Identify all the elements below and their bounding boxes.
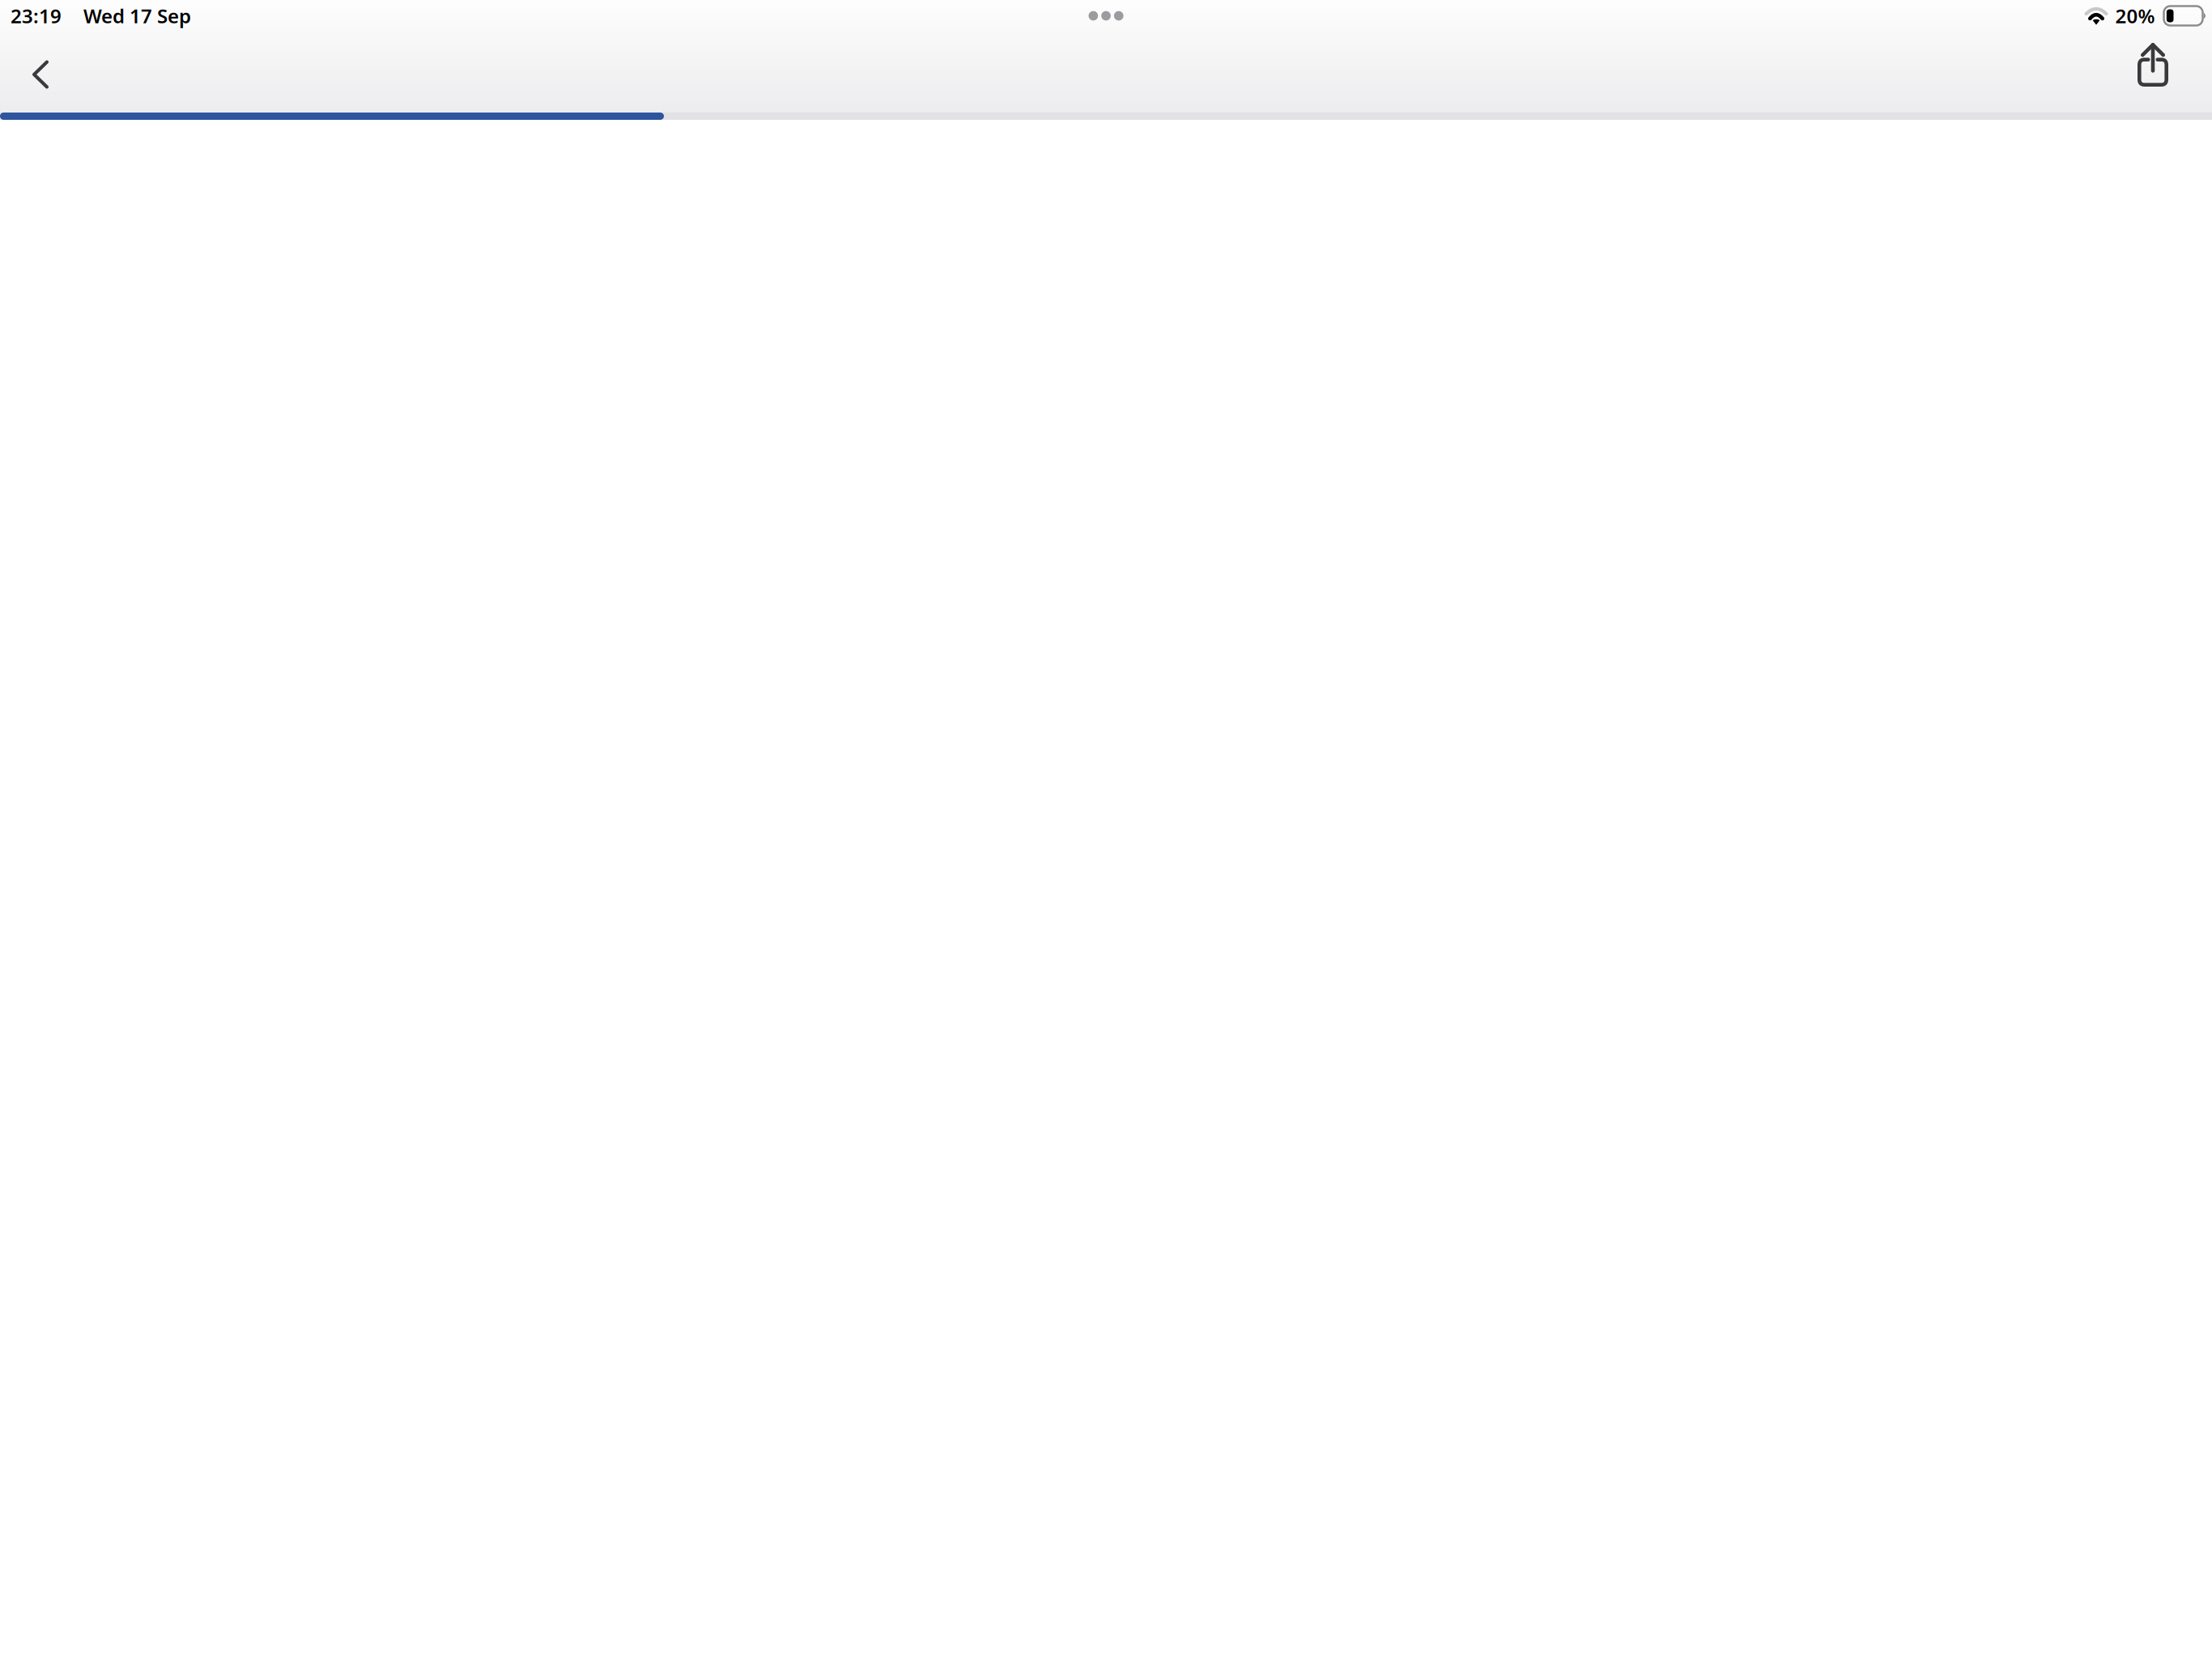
button[interactable]: Multitasking Controls <box>1067 0 1145 34</box>
staticText: 20% <box>2115 3 2155 29</box>
button[interactable]: Back <box>5 36 76 113</box>
button[interactable]: Share <box>2117 36 2189 113</box>
staticText: 23:19 <box>11 3 62 29</box>
staticText: Wed 17 Sep <box>83 3 191 29</box>
